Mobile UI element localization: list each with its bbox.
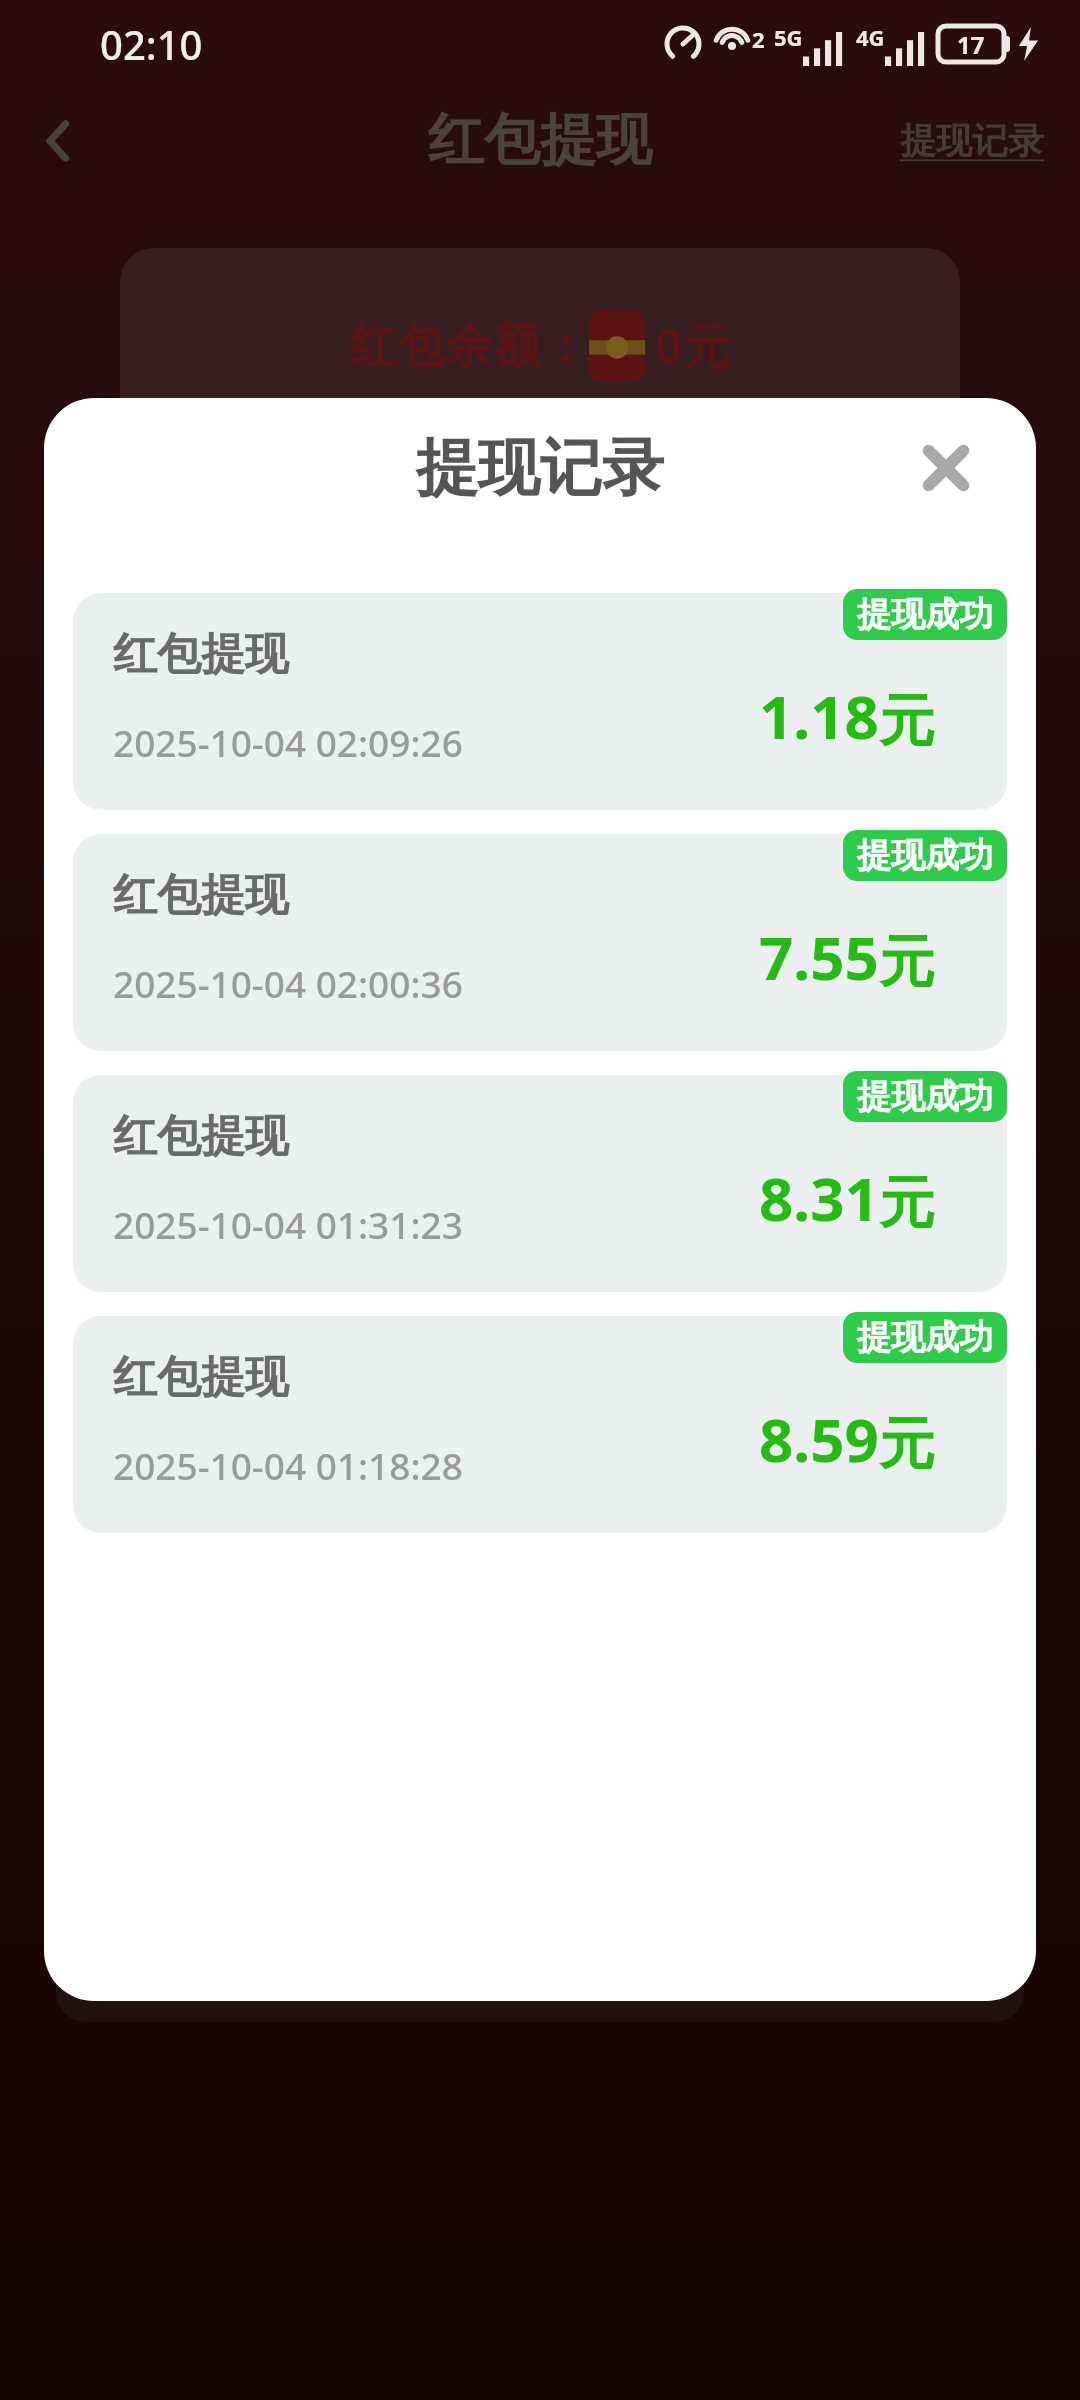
staticText: 提现成功 [857, 834, 993, 877]
staticText: 2025-10-04 02:00:36 [113, 958, 463, 1008]
button[interactable]: Back [24, 105, 96, 177]
staticText: 1.18 [759, 675, 879, 757]
button[interactable]: 红包提现 [73, 593, 1007, 810]
button[interactable]: 红包提现 [73, 1316, 1007, 1533]
staticText: 红包提现 [113, 627, 289, 682]
staticText: 2 [752, 24, 765, 54]
staticText: 7.55 [759, 916, 879, 998]
staticText: 2025-10-04 01:31:23 [113, 1199, 463, 1249]
staticText: 红包提现 [113, 868, 289, 923]
staticText: 2025-10-04 01:18:28 [113, 1440, 463, 1490]
button[interactable]: 红包提现 [73, 1075, 1007, 1292]
staticText: 17 [957, 28, 985, 61]
staticText: 红包余额： [349, 316, 589, 376]
button[interactable]: 红包提现 [73, 834, 1007, 1051]
staticText: 提现记录 [900, 118, 1044, 163]
staticText: 提现成功 [857, 593, 993, 636]
staticText: 5G [774, 22, 803, 52]
staticText: 红包提现 [113, 1350, 289, 1405]
staticText: 元 [879, 1168, 935, 1239]
staticText: 4G [856, 22, 885, 52]
staticText: 红包提现 [428, 105, 652, 176]
staticText: 提现成功 [857, 1316, 993, 1359]
staticText: 提现记录 [416, 429, 664, 507]
button[interactable]: 100倍 [92, 1522, 380, 1942]
staticText: 02:10 [100, 17, 203, 71]
button[interactable]: Close [910, 432, 982, 504]
staticText: 元 [879, 1409, 935, 1480]
staticText: 当前10000元= [338, 423, 557, 469]
staticText: 8.31 [759, 1157, 879, 1239]
button[interactable]: 1000倍 [396, 1522, 684, 1942]
staticText: 元 [879, 927, 935, 998]
staticText: 0元 [655, 313, 731, 379]
button[interactable]: 提现记录 [900, 118, 1044, 163]
staticText: 2025-10-04 02:09:26 [113, 717, 463, 767]
staticText: 到账1.4元 [591, 423, 742, 469]
staticText: 提现成功 [857, 1075, 993, 1118]
staticText: 8.59 [759, 1398, 879, 1480]
staticText: 红包提现 [113, 1109, 289, 1164]
staticText: 元 [879, 686, 935, 757]
button[interactable]: 10000倍 [700, 1522, 988, 1942]
